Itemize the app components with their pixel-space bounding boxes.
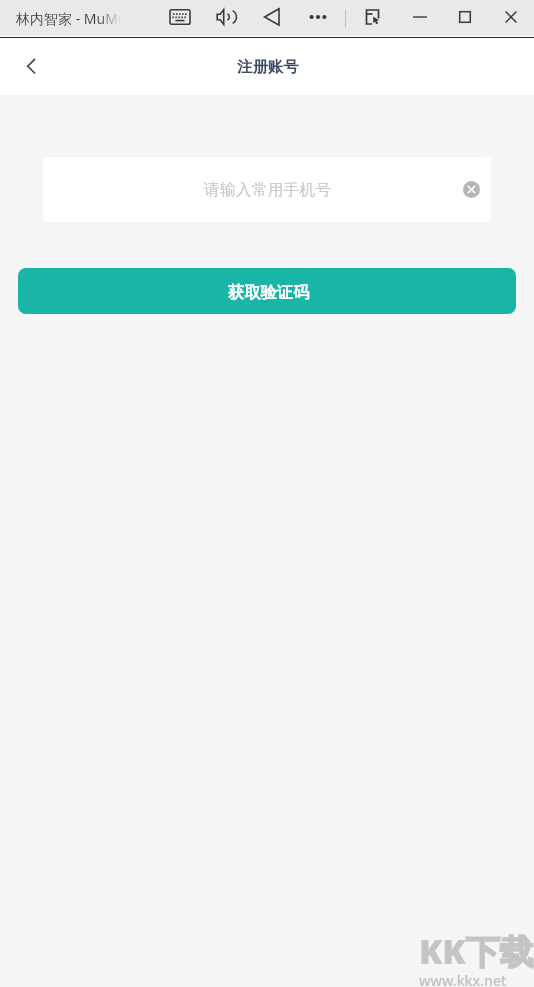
button[interactable]: Back: [254, 0, 290, 36]
staticText: 请输入常用手机号: [204, 180, 332, 200]
button[interactable]: Minimize: [402, 0, 438, 36]
button[interactable]: Maximize: [447, 0, 483, 36]
button[interactable]: Keyboard: [162, 0, 198, 36]
button[interactable]: Screenshot: [355, 0, 391, 36]
staticText: www.kkx.net: [419, 971, 507, 987]
button[interactable]: Clear text: [463, 181, 480, 198]
button[interactable]: 获取验证码: [18, 268, 516, 314]
button[interactable]: Volume: [208, 0, 244, 36]
staticText: 注册账号: [237, 57, 299, 76]
staticText: 林内智家 - MuMu Pl: [16, 9, 121, 28]
button[interactable]: More: [300, 0, 336, 36]
button[interactable]: 请输入常用手机号: [43, 157, 491, 222]
button[interactable]: Back: [0, 38, 56, 95]
staticText: KK下载: [419, 928, 534, 974]
staticText: 获取验证码: [228, 282, 310, 303]
button[interactable]: Close: [493, 0, 529, 36]
